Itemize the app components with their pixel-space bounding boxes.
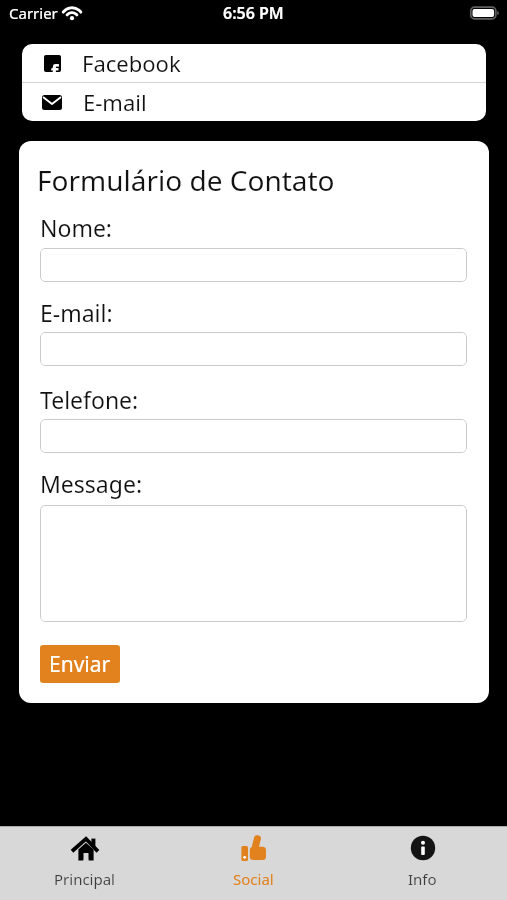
- staticText: Message:: [40, 468, 143, 499]
- staticText: Social: [233, 869, 274, 889]
- button[interactable]: Info: [338, 827, 507, 900]
- button[interactable]: [40, 332, 467, 366]
- button[interactable]: Enviar: [40, 645, 120, 683]
- button[interactable]: f: [22, 44, 486, 82]
- staticText: Principal: [54, 869, 115, 889]
- staticText: E-mail: [83, 87, 147, 117]
- staticText: 6:56 PM: [223, 2, 284, 24]
- staticText: E-mail:: [40, 297, 113, 328]
- button[interactable]: Social: [169, 827, 338, 900]
- button[interactable]: [40, 419, 467, 453]
- staticText: f: [51, 59, 59, 72]
- staticText: Telefone:: [40, 384, 139, 415]
- staticText: Formulário de Contato: [37, 161, 335, 199]
- button[interactable]: [40, 248, 467, 282]
- button[interactable]: E-mail: [22, 83, 486, 121]
- staticText: Enviar: [49, 650, 111, 679]
- button[interactable]: Principal: [0, 827, 169, 900]
- staticText: Info: [408, 869, 437, 889]
- button[interactable]: [40, 505, 467, 622]
- staticText: Facebook: [82, 48, 181, 78]
- staticText: Nome:: [40, 212, 113, 243]
- staticText: Carrier: [9, 3, 58, 23]
